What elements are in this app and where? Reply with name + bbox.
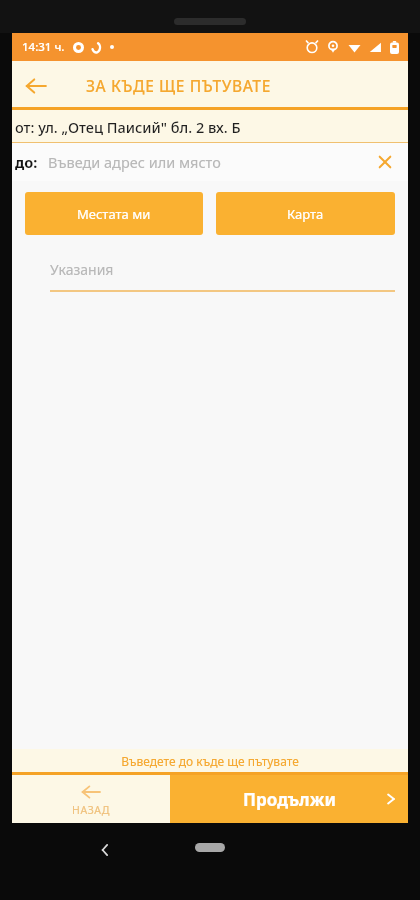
button[interactable]: Back (92, 837, 118, 863)
staticText: Карта (287, 205, 324, 223)
staticText: Указания (50, 260, 114, 279)
button[interactable]: Home (195, 843, 225, 852)
staticText: Местата ми (77, 205, 151, 223)
button[interactable]: Изчисти (370, 147, 400, 177)
button[interactable]: до: (12, 143, 408, 181)
staticText: Продължи (243, 788, 336, 811)
button[interactable]: НАЗАД (12, 775, 170, 823)
button[interactable]: Местата ми (25, 192, 203, 235)
staticText: 14:31 ч. (22, 39, 65, 55)
button[interactable]: Назад (12, 62, 60, 110)
staticText: до: (15, 152, 38, 172)
button[interactable]: Продължи (170, 775, 408, 823)
staticText: Въведи адрес или място (48, 152, 221, 172)
button[interactable]: от: ул. „Отец Паисий" бл. 2 вх. Б (12, 110, 408, 143)
staticText: НАЗАД (72, 803, 110, 817)
staticText: Въведете до къде ще пътувате (121, 753, 299, 769)
button[interactable]: Карта (216, 192, 395, 235)
staticText: ЗА КЪДЕ ЩЕ ПЪТУВАТЕ (86, 75, 271, 96)
staticText: от: ул. „Отец Паисий" бл. 2 вх. Б (15, 117, 241, 137)
